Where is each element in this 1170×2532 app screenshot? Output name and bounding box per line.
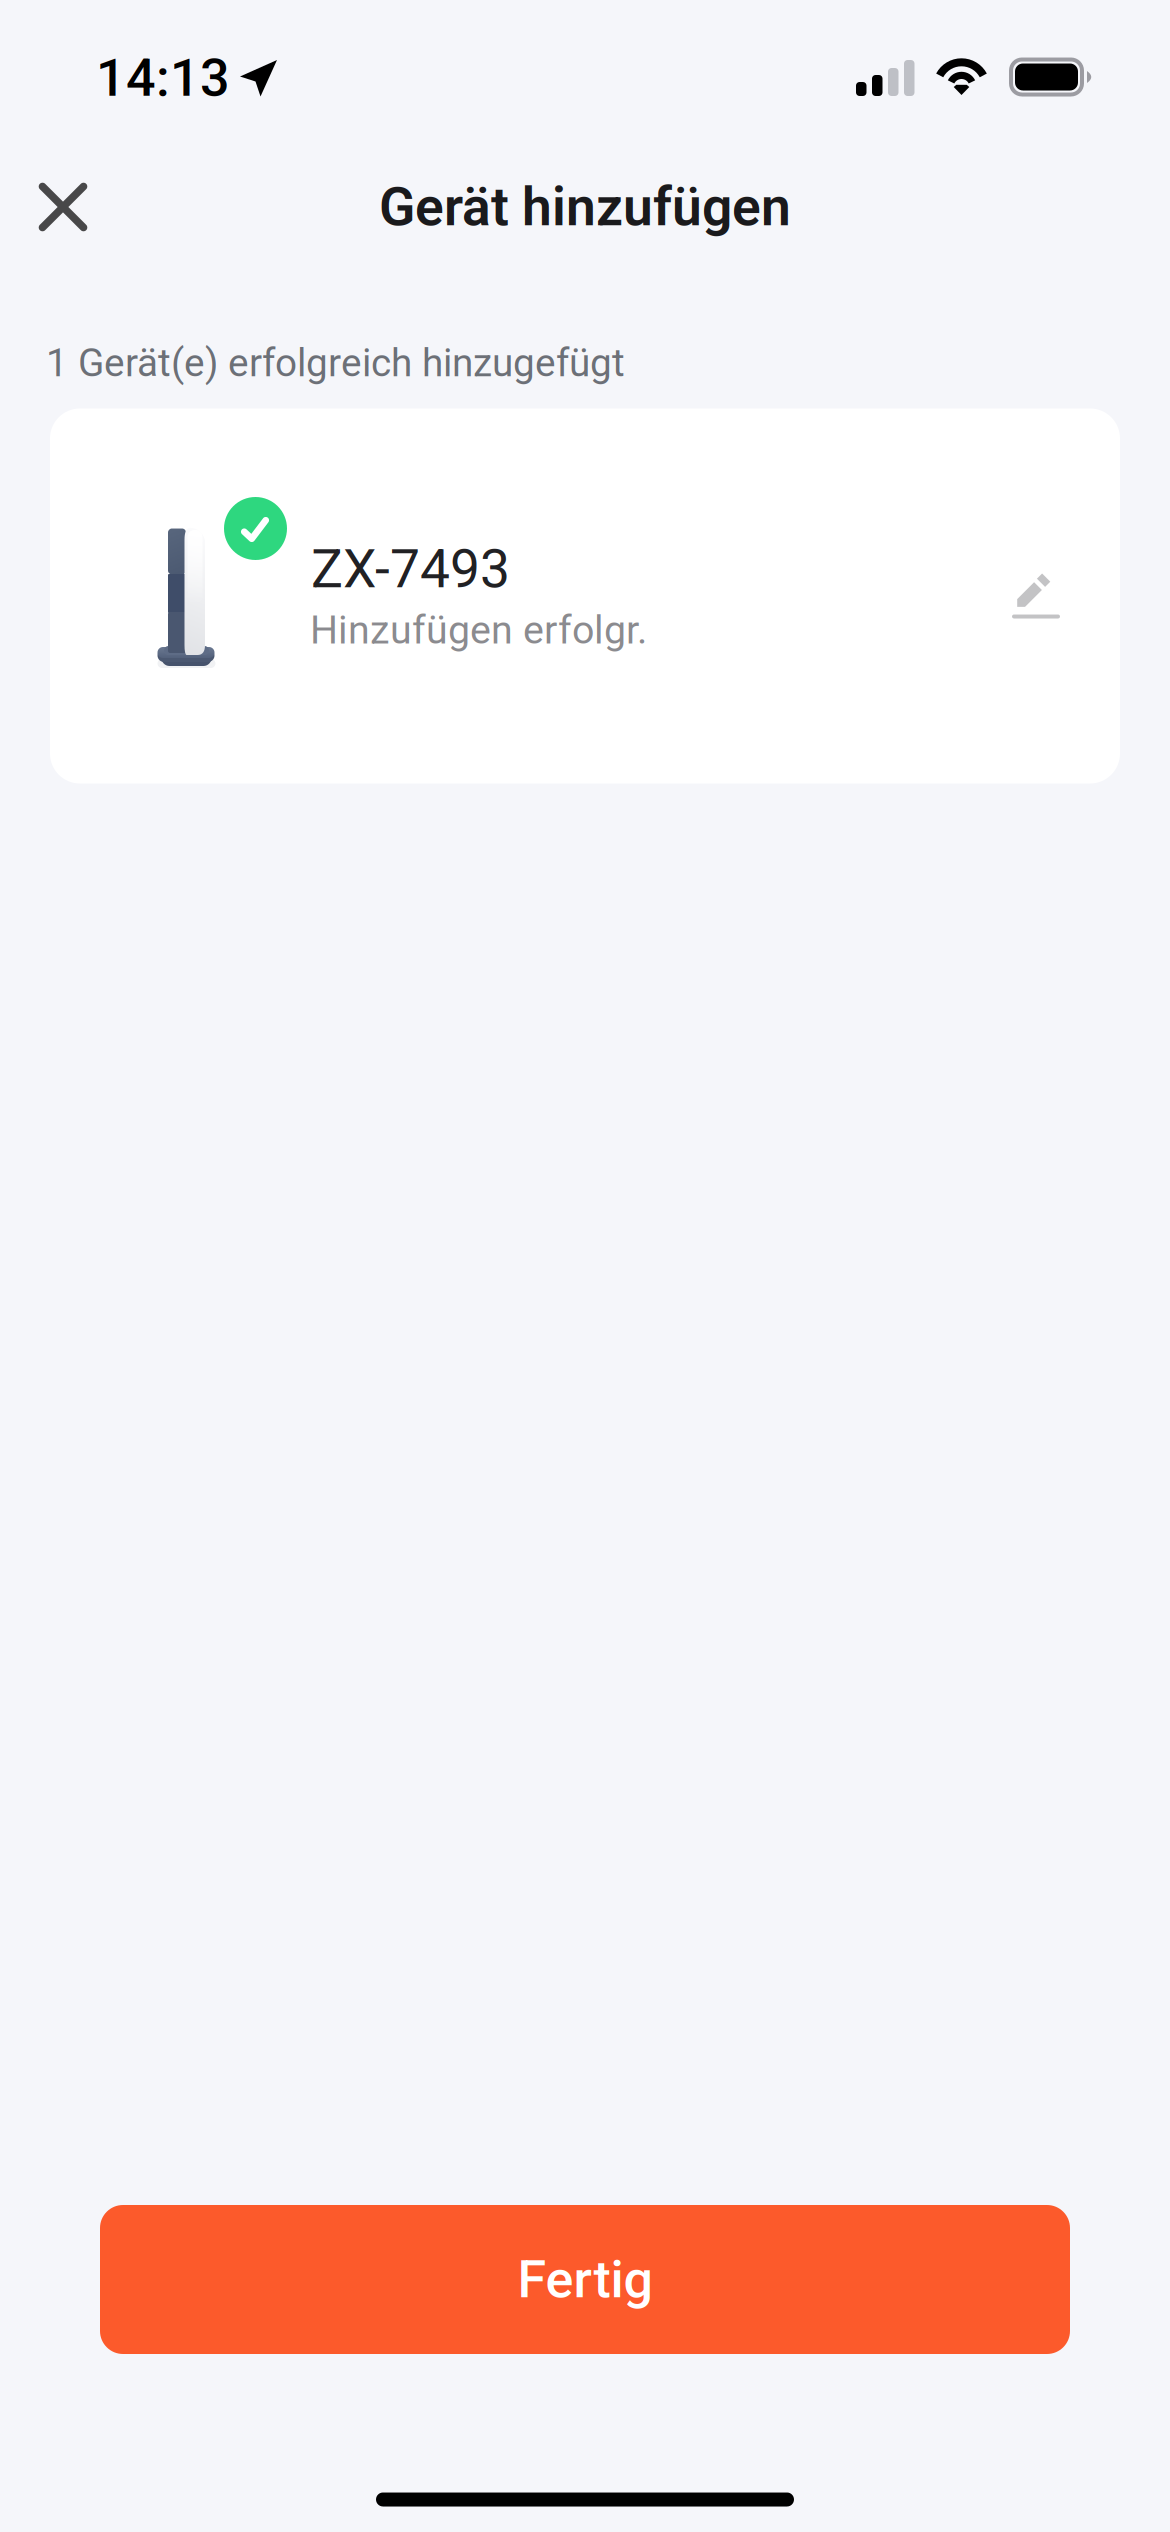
staticText: ZX-7493 [311,538,510,600]
staticText: Gerät hinzufügen [379,176,791,238]
button[interactable]: Fertig [100,2205,1070,2354]
staticText: Fertig [517,2249,652,2310]
staticText: 1 Gerät(e) erfolgreich hinzugefügt [46,340,625,386]
staticText: Hinzufügen erfolgr. [310,607,647,653]
button[interactable]: Gerät umbenennen [981,540,1091,650]
button[interactable]: Schließen [3,152,123,262]
staticText: 14:13 [96,47,230,108]
